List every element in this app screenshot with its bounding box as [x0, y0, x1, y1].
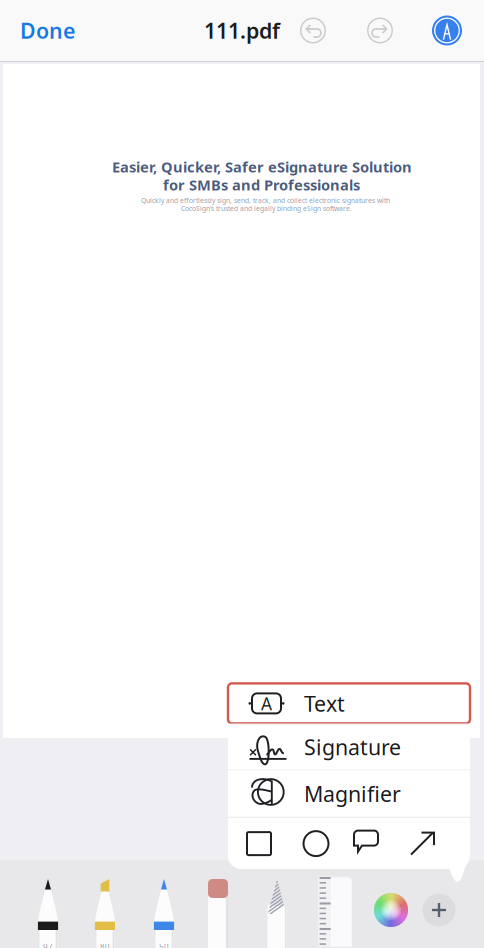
button[interactable]: Eraser [200, 879, 236, 948]
button[interactable]: Ruler [318, 880, 352, 948]
staticText: Done [20, 16, 75, 45]
button[interactable]: Redo [363, 13, 397, 47]
button[interactable]: Magnifier [228, 770, 470, 817]
button[interactable]: Pen [30, 879, 66, 948]
staticText: CocoSign's trusted and legally binding e… [181, 204, 352, 213]
staticText: Magnifier [304, 779, 401, 808]
staticText: 111.pdf [204, 16, 280, 45]
staticText: 50 [159, 942, 169, 948]
button[interactable]: Undo [296, 13, 330, 47]
button[interactable]: Add tool [418, 889, 460, 931]
staticText: A [261, 692, 272, 715]
staticText: Text [304, 689, 345, 717]
button[interactable]: Pencil [146, 879, 182, 948]
button[interactable]: Highlighter [87, 879, 123, 948]
staticText: for SMBs and Professionals [163, 175, 360, 194]
button[interactable]: Graphite pencil [259, 879, 295, 948]
button[interactable]: Speech bubble [342, 818, 394, 870]
button[interactable]: A [228, 683, 470, 723]
button[interactable]: Arrow [394, 818, 452, 870]
button[interactable]: Circle [290, 818, 342, 870]
button[interactable]: Signature [228, 724, 470, 770]
staticText: Signature [304, 733, 401, 761]
staticText: 80 [100, 942, 110, 948]
staticText: Quickly and effortlessly sign, send, tra… [141, 196, 390, 205]
button[interactable]: Done [0, 0, 95, 61]
button[interactable]: Square [228, 818, 290, 870]
button[interactable]: Colour [370, 889, 412, 931]
staticText: Easier, Quicker, Safer eSignature Soluti… [112, 157, 412, 176]
staticText: 97 [43, 942, 53, 948]
button[interactable]: Markup tools [430, 13, 464, 47]
